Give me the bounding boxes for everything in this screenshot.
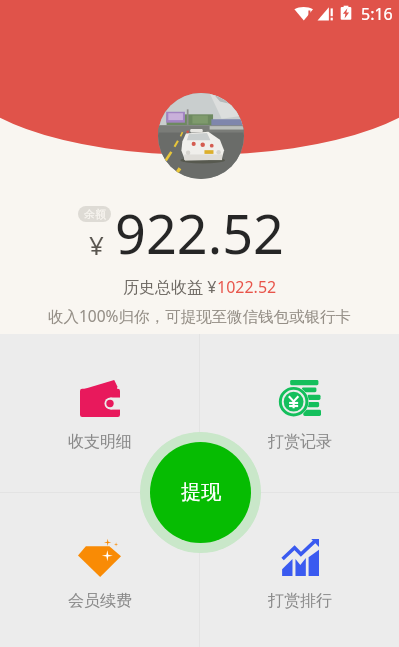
staticText: 余额 bbox=[84, 207, 106, 221]
staticText: 提现 bbox=[181, 480, 221, 505]
staticText: 会员续费 bbox=[68, 591, 132, 611]
staticText: 5:16 bbox=[361, 3, 393, 25]
staticText: 922.52 bbox=[115, 196, 284, 270]
staticText: 打赏排行 bbox=[268, 591, 332, 611]
button[interactable]: 打赏排行 bbox=[200, 493, 399, 647]
button[interactable]: 打赏记录 bbox=[200, 334, 399, 492]
staticText: ¥ bbox=[89, 227, 104, 262]
button[interactable]: 提现 bbox=[140, 432, 261, 553]
staticText: 历史总收益 ¥ bbox=[123, 276, 217, 298]
button[interactable]: 收支明细 bbox=[0, 334, 199, 492]
button[interactable]: 会员续费 bbox=[0, 493, 199, 647]
staticText: 打赏记录 bbox=[268, 432, 332, 452]
staticText: 收入100%归你，可提现至微信钱包或银行卡 bbox=[48, 305, 351, 326]
staticText: 收支明细 bbox=[68, 432, 132, 452]
staticText: 1022.52 bbox=[217, 276, 277, 298]
